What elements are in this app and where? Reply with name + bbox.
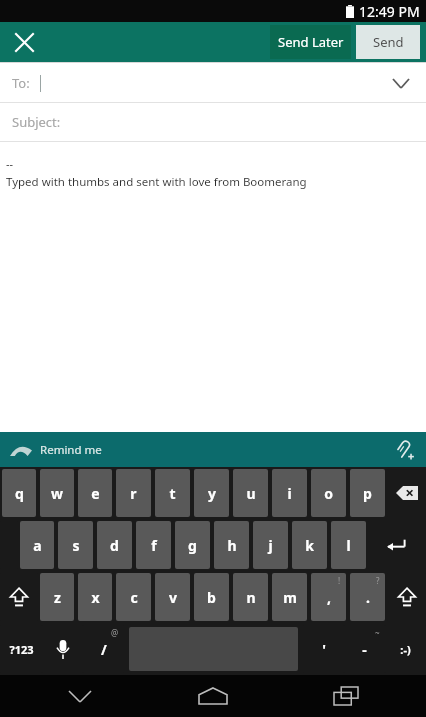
button[interactable] <box>42 625 83 673</box>
button[interactable]: Recent apps <box>326 676 366 716</box>
staticText: x <box>91 588 100 607</box>
button[interactable]: . <box>350 573 385 621</box>
button[interactable]: / <box>83 625 124 673</box>
button[interactable] <box>368 521 426 569</box>
button[interactable]: g <box>175 521 210 569</box>
button[interactable]: r <box>116 469 151 517</box>
staticText: n <box>246 588 256 607</box>
button[interactable]: j <box>253 521 288 569</box>
button[interactable]: - <box>344 625 385 673</box>
button[interactable]: q <box>2 469 36 517</box>
staticText: z <box>54 588 61 607</box>
button[interactable]: Hide keyboard <box>60 676 100 716</box>
button[interactable]: :-) <box>385 625 426 673</box>
button[interactable]: m <box>272 573 307 621</box>
staticText: ' <box>322 640 326 659</box>
staticText: m <box>283 588 297 607</box>
staticText: @ <box>111 627 119 638</box>
staticText: b <box>207 588 216 607</box>
button[interactable]: z <box>40 573 74 621</box>
staticText: u <box>246 484 256 503</box>
staticText: w <box>51 484 63 503</box>
staticText: g <box>188 536 197 555</box>
staticText: y <box>208 484 216 503</box>
button[interactable]: Subject: <box>0 103 426 141</box>
staticText: To: <box>12 74 30 92</box>
staticText: - <box>362 640 367 659</box>
button[interactable]: c <box>116 573 151 621</box>
staticText: ! <box>338 575 341 586</box>
staticText: . <box>366 588 370 607</box>
button[interactable]: Expand recipients <box>386 68 416 98</box>
button[interactable]: n <box>233 573 268 621</box>
button[interactable]: l <box>331 521 366 569</box>
button[interactable]: Close <box>8 26 40 58</box>
button[interactable]: a <box>20 521 54 569</box>
staticText: a <box>33 536 42 555</box>
button[interactable]: ?123 <box>0 625 42 673</box>
staticText: 12:49 PM <box>359 2 420 21</box>
staticText: d <box>110 536 119 555</box>
staticText: k <box>305 536 314 555</box>
button[interactable]: e <box>78 469 112 517</box>
button[interactable]: d <box>97 521 132 569</box>
staticText: Remind me <box>40 442 102 458</box>
button[interactable]: k <box>292 521 327 569</box>
button[interactable]: b <box>194 573 229 621</box>
staticText: :-) <box>400 642 411 657</box>
button[interactable]: s <box>58 521 93 569</box>
staticText: p <box>363 484 372 503</box>
button[interactable]: Home <box>193 676 233 716</box>
staticText: , <box>327 588 331 607</box>
staticText: s <box>72 536 80 555</box>
staticText: o <box>324 484 333 503</box>
staticText: j <box>268 536 273 555</box>
button[interactable] <box>126 625 301 673</box>
staticText: r <box>130 484 137 503</box>
staticText: q <box>15 484 24 503</box>
staticText: -- <box>6 156 14 171</box>
staticText: Typed with thumbs and sent with love fro… <box>6 174 307 190</box>
button[interactable]: o <box>311 469 346 517</box>
button[interactable]: , <box>311 573 346 621</box>
staticText: i <box>287 484 292 503</box>
staticText: e <box>91 484 100 503</box>
button[interactable]: h <box>214 521 249 569</box>
button[interactable]: Send <box>356 25 420 59</box>
staticText: ?123 <box>9 642 34 657</box>
staticText: h <box>227 536 237 555</box>
button[interactable]: x <box>78 573 112 621</box>
staticText: Subject: <box>12 113 61 131</box>
staticText: Send Later <box>278 33 344 51</box>
staticText: ? <box>376 575 380 586</box>
button[interactable]: t <box>155 469 190 517</box>
staticText: ~ <box>375 627 380 638</box>
staticText: l <box>346 536 351 555</box>
button[interactable]: ' <box>303 625 344 673</box>
button[interactable] <box>387 469 426 517</box>
button[interactable]: w <box>40 469 74 517</box>
button[interactable] <box>0 573 38 621</box>
staticText: Send <box>373 33 404 51</box>
button[interactable]: u <box>233 469 268 517</box>
button[interactable]: To: <box>0 63 426 102</box>
button[interactable]: v <box>155 573 190 621</box>
button[interactable]: i <box>272 469 307 517</box>
button[interactable] <box>387 573 426 621</box>
staticText: / <box>101 640 107 659</box>
button[interactable]: Attach file <box>388 434 420 466</box>
button[interactable]: y <box>194 469 229 517</box>
staticText: v <box>169 588 177 607</box>
button[interactable]: p <box>350 469 385 517</box>
button[interactable]: Send Later <box>270 25 351 59</box>
staticText: c <box>130 588 138 607</box>
staticText: f <box>151 536 157 555</box>
button[interactable]: Remind me <box>10 442 102 458</box>
button[interactable]: f <box>136 521 171 569</box>
staticText: t <box>169 484 176 503</box>
